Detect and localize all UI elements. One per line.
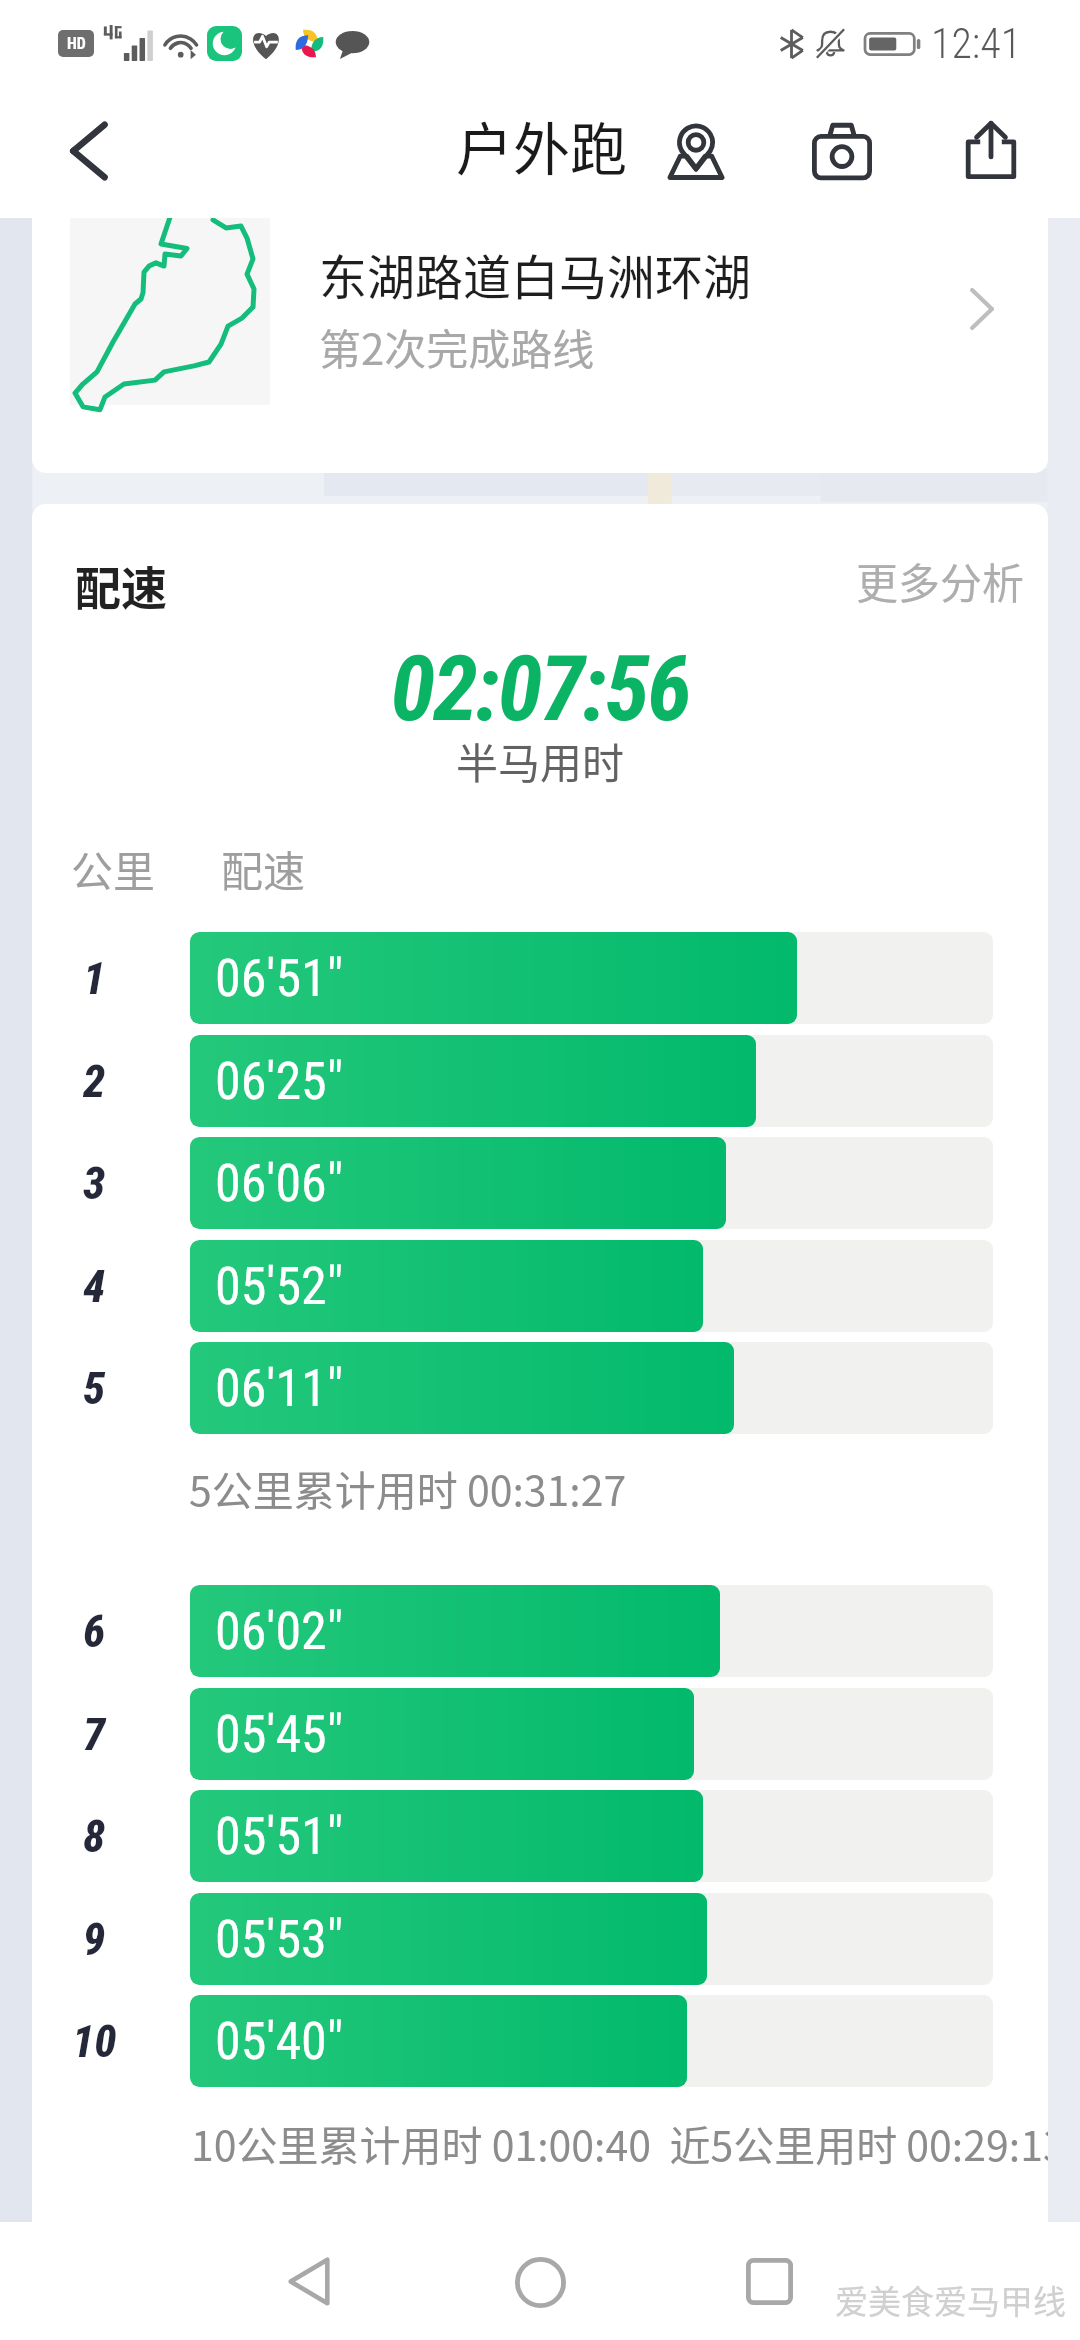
staticText: 12:41 bbox=[931, 19, 1022, 68]
button[interactable]: Back bbox=[51, 103, 147, 199]
staticText: 06'11" bbox=[215, 1358, 344, 1419]
staticText: 1 bbox=[83, 952, 106, 1005]
staticText: 06'02" bbox=[215, 1601, 344, 1662]
button[interactable]: Share bbox=[951, 110, 1031, 190]
staticText: 配速 bbox=[221, 838, 306, 899]
staticText: 爱美食爱马甲线 bbox=[835, 2276, 1066, 2324]
button[interactable]: 更多分析 bbox=[856, 550, 1025, 611]
staticText: 5 bbox=[83, 1362, 106, 1415]
staticText: 更多分析 bbox=[856, 550, 1025, 611]
staticText: 2 bbox=[83, 1055, 106, 1108]
staticText: 东湖路道白马洲环湖 bbox=[319, 239, 752, 309]
staticText: 02:07:56 bbox=[32, 636, 1048, 743]
button[interactable]: Recents bbox=[714, 2226, 824, 2336]
staticText: 06'06" bbox=[215, 1153, 344, 1214]
staticText: 05'40" bbox=[215, 2011, 344, 2072]
staticText: 10 bbox=[72, 2015, 117, 2068]
staticText: HD bbox=[67, 34, 86, 53]
button[interactable]: 东湖路道白马洲环湖 bbox=[32, 218, 1048, 473]
staticText: 第2次完成路线 bbox=[319, 316, 595, 377]
staticText: 5公里累计用时 00:31:27 bbox=[189, 1458, 627, 1517]
staticText: 配速 bbox=[75, 552, 167, 619]
button[interactable]: Camera bbox=[800, 109, 884, 193]
button[interactable]: Map bbox=[654, 110, 738, 194]
staticText: 05'51" bbox=[215, 1806, 344, 1867]
staticText: 06'25" bbox=[215, 1051, 344, 1112]
staticText: 05'53" bbox=[215, 1909, 344, 1970]
staticText: 公里 bbox=[71, 838, 156, 899]
staticText: 半马用时 bbox=[32, 730, 1048, 791]
staticText: 10公里累计用时 01:00:40 近5公里用时 00:29:13 bbox=[191, 2113, 1048, 2172]
staticText: 4 bbox=[83, 1260, 106, 1313]
staticText: 7 bbox=[83, 1708, 106, 1761]
staticText: 05'45" bbox=[215, 1704, 344, 1765]
staticText: 8 bbox=[83, 1810, 106, 1863]
staticText: 06'51" bbox=[215, 948, 344, 1009]
staticText: 05'52" bbox=[215, 1256, 344, 1317]
staticText: 6 bbox=[83, 1605, 106, 1658]
staticText: 户外跑 bbox=[456, 104, 627, 187]
button[interactable]: Home bbox=[485, 2227, 595, 2337]
button[interactable]: Back bbox=[254, 2226, 364, 2336]
staticText: 9 bbox=[83, 1913, 106, 1966]
staticText: 3 bbox=[83, 1157, 106, 1210]
